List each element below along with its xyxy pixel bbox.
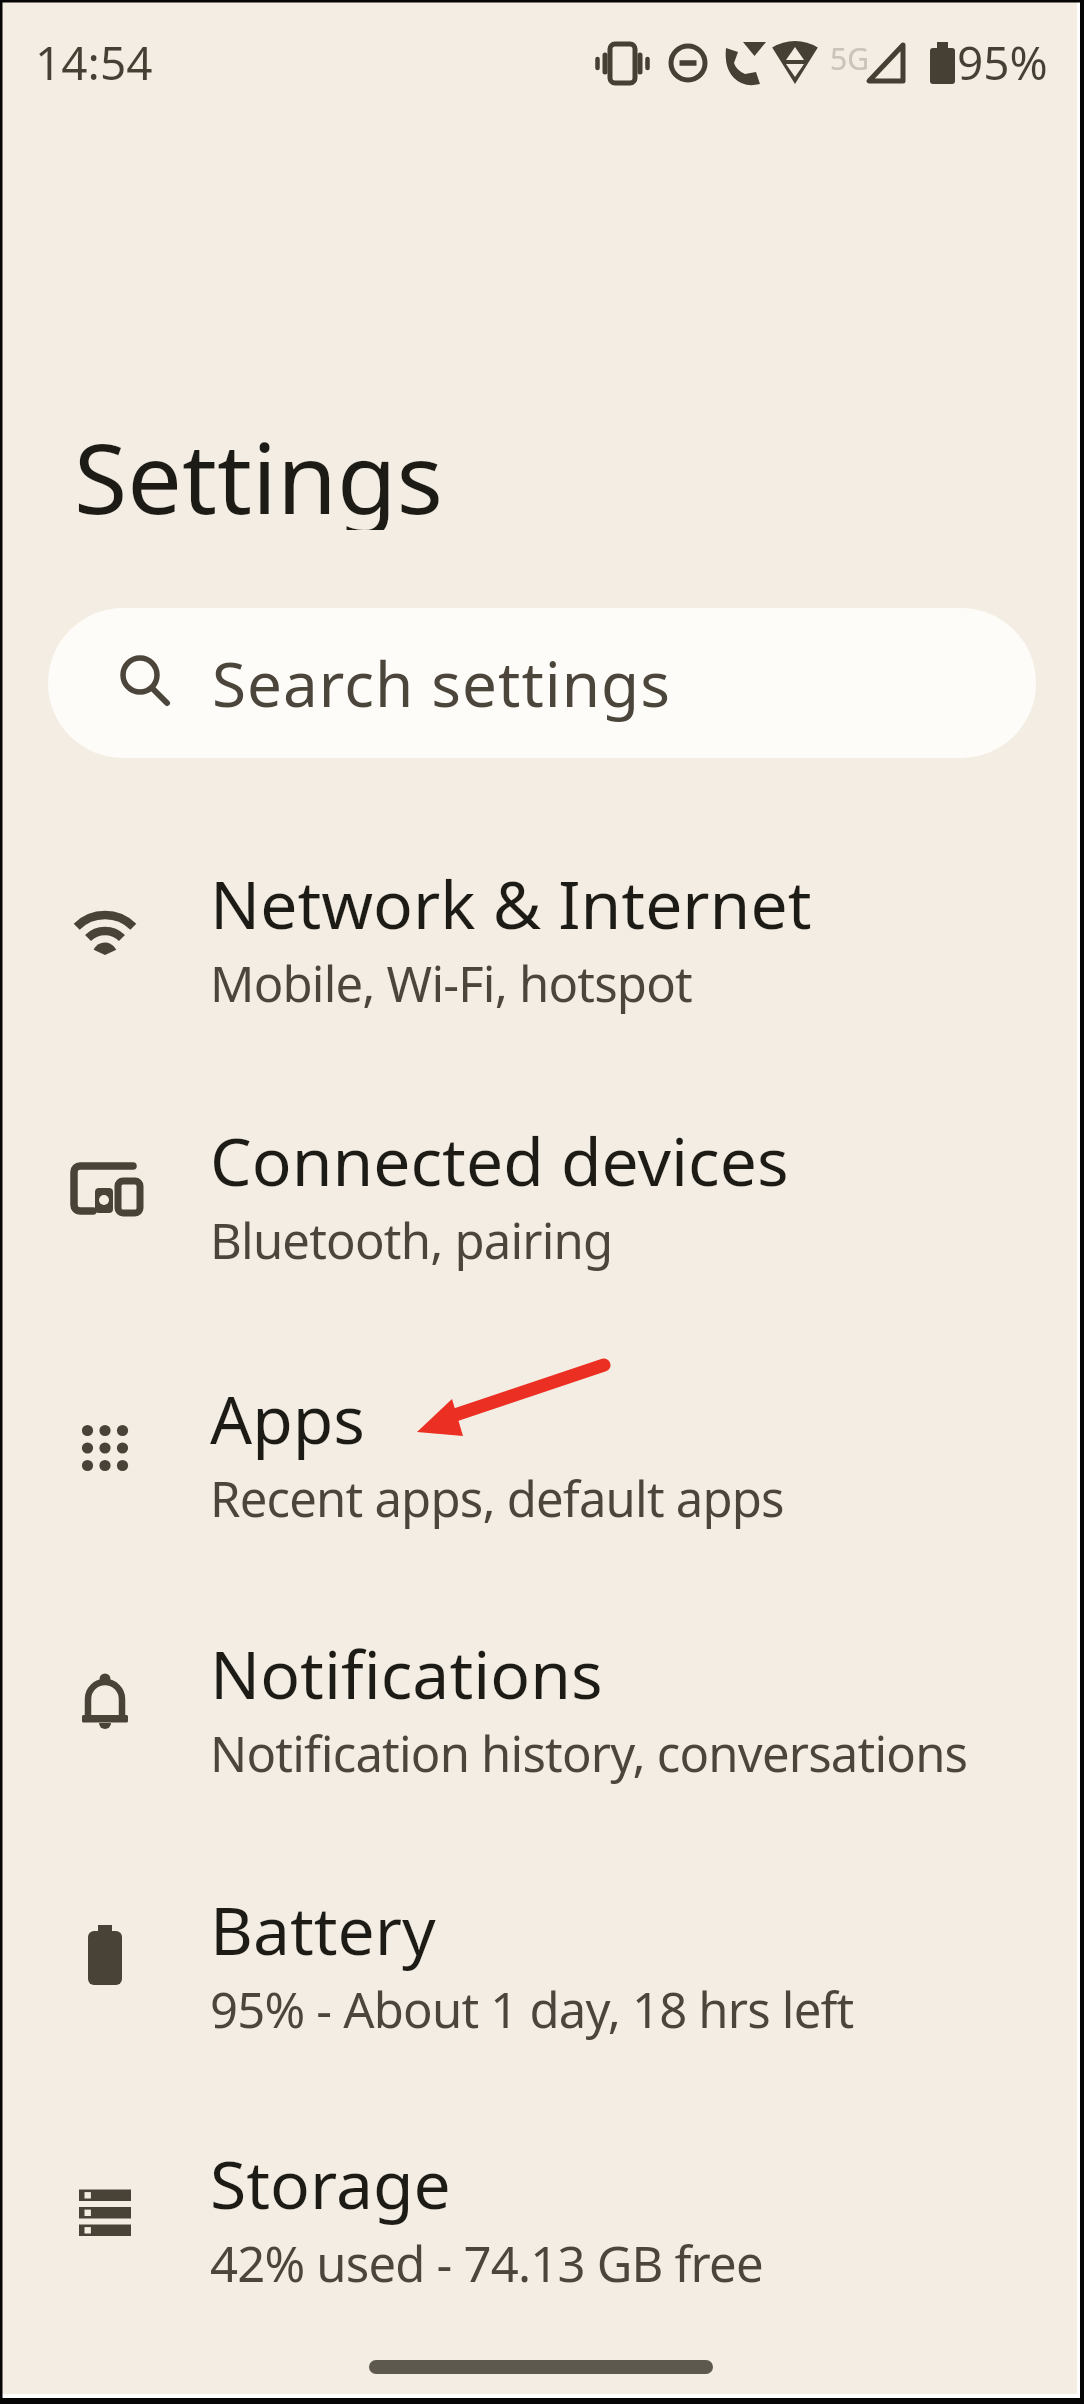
- staticText: Notifications: [210, 1628, 603, 1718]
- staticText: Search settings: [212, 641, 671, 725]
- staticText: 14:54: [35, 31, 153, 94]
- button[interactable]: Battery: [0, 1859, 1084, 2079]
- staticText: 5G: [830, 38, 869, 79]
- button[interactable]: Storage: [0, 2113, 1084, 2333]
- staticText: Network & Internet: [210, 858, 812, 948]
- staticText: Battery: [210, 1884, 436, 1974]
- button[interactable]: Apps: [0, 1348, 1084, 1568]
- staticText: Recent apps, default apps: [210, 1465, 784, 1532]
- button[interactable]: Search settings: [48, 608, 1036, 758]
- staticText: Connected devices: [210, 1115, 789, 1205]
- staticText: Bluetooth, pairing: [210, 1207, 613, 1274]
- staticText: Settings: [74, 410, 444, 530]
- staticText: 95% - About 1 day, 18 hrs left: [210, 1976, 854, 2043]
- staticText: Apps: [210, 1373, 365, 1463]
- button[interactable]: Network & Internet: [0, 833, 1084, 1053]
- staticText: Mobile, Wi-Fi, hotspot: [210, 950, 692, 1017]
- staticText: 42% used - 74.13 GB free: [210, 2230, 763, 2297]
- button[interactable]: Connected devices: [0, 1090, 1084, 1310]
- staticText: 95%: [957, 31, 1048, 94]
- button[interactable]: Notifications: [0, 1603, 1084, 1823]
- staticText: Notification history, conversations: [210, 1720, 968, 1787]
- staticText: Storage: [210, 2138, 451, 2228]
